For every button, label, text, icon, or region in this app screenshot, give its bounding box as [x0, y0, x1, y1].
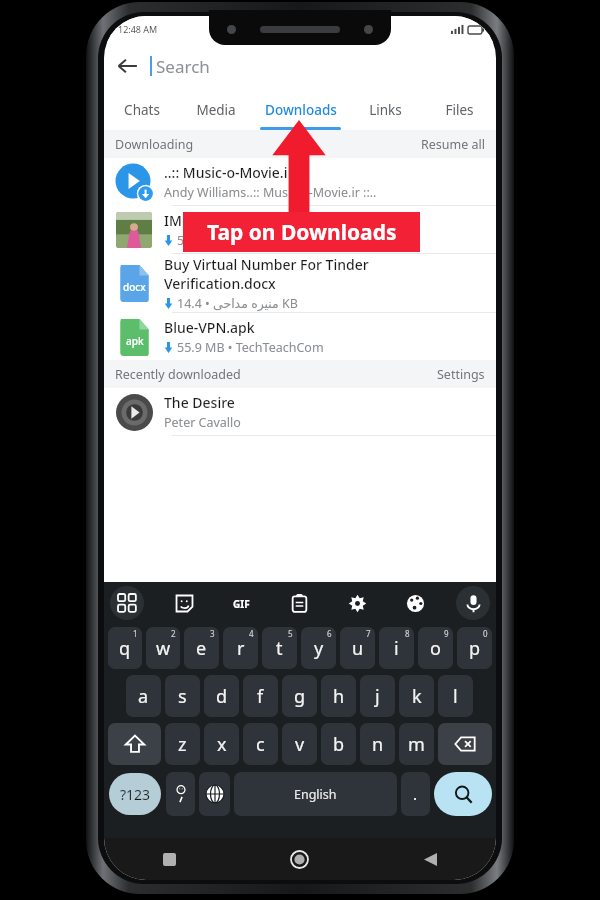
button[interactable]: y — [301, 627, 336, 669]
button[interactable]: ..:: Music-o-Movie.i ::.. — [104, 158, 496, 205]
button[interactable]: ?123 — [109, 773, 161, 815]
button[interactable]: Back — [104, 43, 150, 89]
staticText: Downloading — [115, 136, 194, 153]
button[interactable]: Backspace — [438, 723, 492, 765]
button[interactable]: w — [146, 627, 180, 669]
staticText: . — [413, 784, 418, 804]
button[interactable]: h — [321, 675, 356, 717]
staticText: h — [333, 684, 345, 709]
button[interactable]: m — [399, 723, 434, 765]
staticText: t — [276, 636, 283, 661]
staticText: Tap on Downloads — [207, 218, 397, 247]
button[interactable]: Downloads — [253, 90, 348, 130]
button[interactable]: z — [165, 723, 200, 765]
staticText: r — [237, 636, 245, 661]
button[interactable]: s — [165, 675, 200, 717]
button[interactable]: x — [204, 723, 239, 765]
button[interactable]: r — [223, 627, 258, 669]
staticText: c — [256, 732, 265, 757]
staticText: Search — [156, 55, 210, 78]
button[interactable]: g — [282, 675, 317, 717]
button[interactable]: Recent apps — [104, 838, 234, 880]
staticText: 55.9 MB • TechTeachCom — [177, 339, 324, 356]
button[interactable]: Settings — [340, 586, 374, 620]
button[interactable]: Theme — [398, 586, 432, 620]
staticText: k — [412, 684, 422, 709]
button[interactable]: u — [340, 627, 375, 669]
staticText: n — [372, 732, 384, 757]
button[interactable]: Media — [179, 90, 253, 130]
staticText: Buy Virtual Number For Tinder Verificati… — [164, 255, 369, 293]
button[interactable]: Links — [348, 90, 422, 130]
button[interactable]: Shift — [108, 723, 161, 765]
staticText: b — [333, 732, 345, 757]
staticText: 5.6 MB • ClockLearns — [177, 232, 300, 249]
button[interactable]: q — [108, 627, 142, 669]
button[interactable]: Search — [434, 772, 492, 816]
button[interactable]: o — [418, 627, 453, 669]
staticText: Links — [369, 101, 402, 119]
button[interactable]: i — [379, 627, 414, 669]
staticText: English — [294, 786, 337, 803]
button[interactable]: d — [204, 675, 239, 717]
staticText: docx — [123, 280, 146, 294]
staticText: 2 — [171, 628, 176, 639]
button[interactable]: Apps — [110, 586, 144, 620]
button[interactable]: Stickers — [167, 586, 201, 620]
button[interactable]: Clipboard — [282, 586, 316, 620]
button[interactable]: j — [360, 675, 395, 717]
button[interactable]: IM — [104, 206, 496, 253]
button[interactable]: p — [457, 627, 492, 669]
button[interactable]: v — [282, 723, 317, 765]
staticText: p — [469, 636, 481, 661]
button[interactable]: f — [243, 675, 278, 717]
button[interactable]: The Desire — [104, 388, 496, 435]
staticText: x — [217, 732, 227, 757]
staticText: Peter Cavallo — [164, 414, 241, 431]
button[interactable]: Home — [234, 838, 365, 880]
button[interactable]: e — [184, 627, 219, 669]
button[interactable]: Chats — [104, 90, 179, 130]
staticText: a — [138, 684, 149, 709]
staticText: f — [257, 684, 264, 709]
staticText: Recently downloaded — [115, 366, 241, 383]
staticText: 0 — [483, 628, 488, 639]
button[interactable]: Change language — [199, 772, 230, 816]
button[interactable]: docx — [104, 254, 496, 312]
button[interactable]: Emoji comma — [166, 772, 195, 816]
staticText: 1 — [133, 628, 138, 639]
button[interactable]: a — [126, 675, 161, 717]
staticText: منیره مداحی • 14.4 KB — [177, 295, 298, 312]
staticText: 6 — [327, 628, 332, 639]
button[interactable]: Resume all — [410, 130, 496, 158]
button[interactable]: Voice input — [456, 586, 490, 620]
button[interactable]: c — [243, 723, 278, 765]
button[interactable]: . — [401, 772, 430, 816]
button[interactable]: n — [360, 723, 395, 765]
staticText: Blue-VPN.apk — [164, 318, 255, 337]
staticText: z — [178, 732, 187, 757]
staticText: 8 — [405, 628, 410, 639]
button[interactable]: t — [262, 627, 297, 669]
staticText: Files — [445, 101, 474, 119]
staticText: g — [294, 684, 306, 709]
staticText: ?123 — [120, 785, 151, 804]
staticText: u — [352, 636, 364, 661]
button[interactable]: k — [399, 675, 434, 717]
button[interactable]: Files — [422, 90, 496, 130]
staticText: j — [375, 684, 380, 709]
staticText: Resume all — [421, 136, 485, 153]
staticText: 4 — [249, 628, 254, 639]
button[interactable]: Settings — [426, 360, 496, 388]
button[interactable]: l — [438, 675, 473, 717]
staticText: 5 — [288, 628, 293, 639]
staticText: IM — [164, 211, 182, 230]
button[interactable]: Back — [365, 838, 496, 880]
staticText: i — [394, 636, 399, 661]
button[interactable]: apk — [104, 313, 496, 360]
button[interactable]: b — [321, 723, 356, 765]
button[interactable]: English — [234, 772, 397, 816]
button[interactable]: GIF — [224, 586, 258, 620]
staticText: s — [178, 684, 187, 709]
staticText: l — [453, 684, 458, 709]
